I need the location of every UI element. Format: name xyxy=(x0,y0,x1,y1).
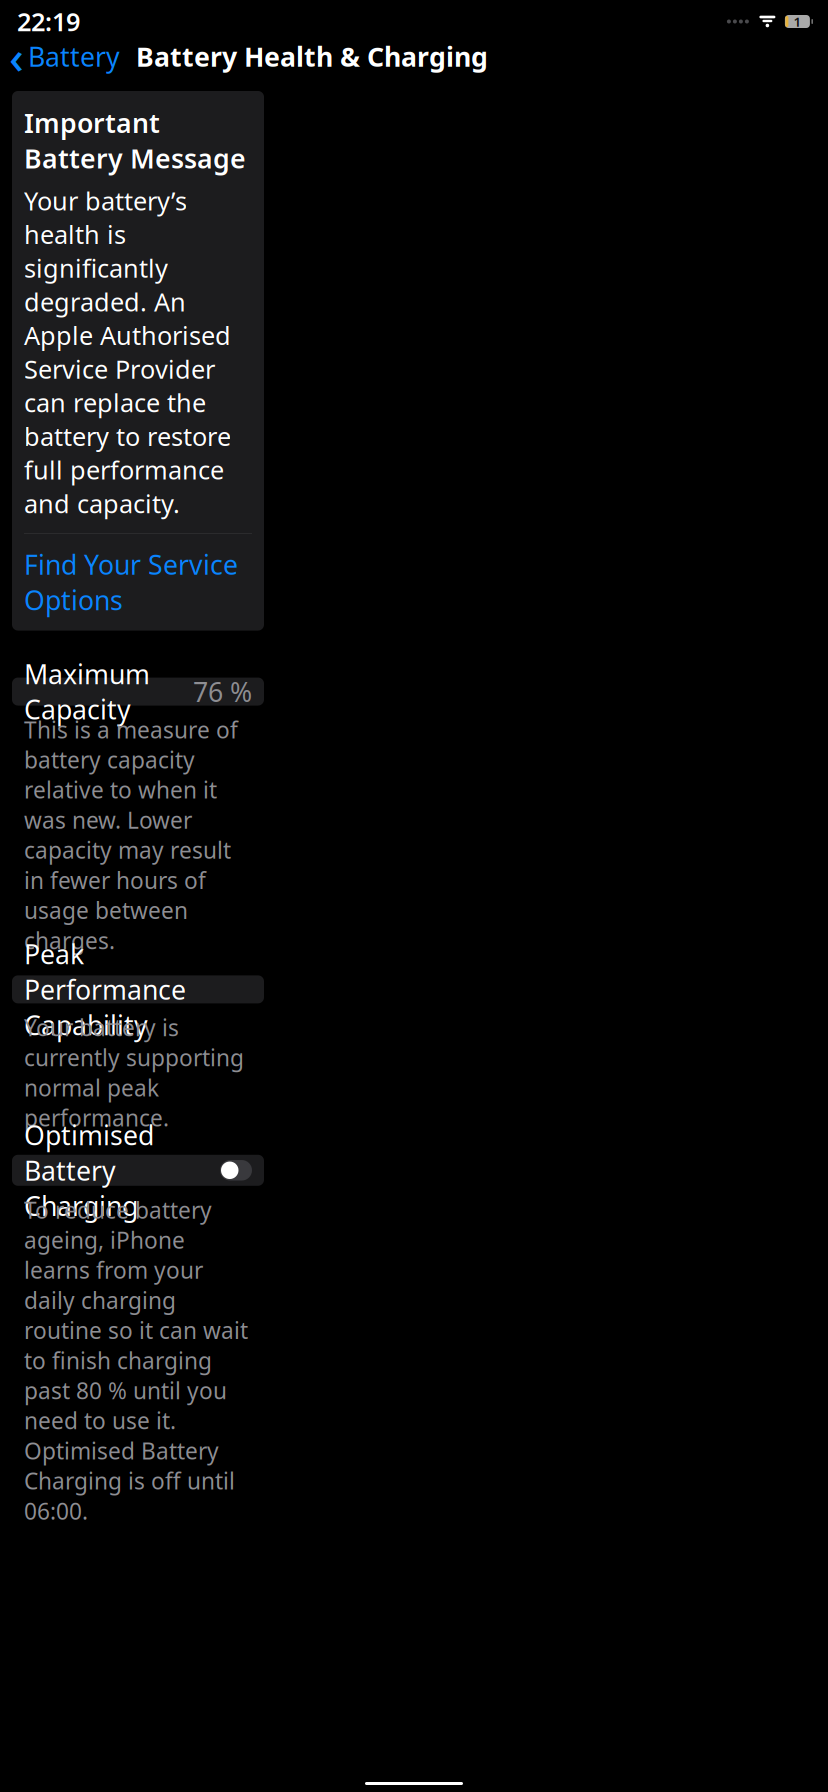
staticText: 1 xyxy=(793,13,801,30)
button[interactable]: ‹ xyxy=(3,32,126,81)
staticText: This is a measure of battery capacity re… xyxy=(24,715,238,955)
button[interactable]: Find Your Service Options xyxy=(24,534,252,630)
button[interactable]: Optimised Battery Charging xyxy=(12,1155,264,1186)
staticText: Peak Performance Capability xyxy=(24,936,186,1042)
staticText: Your battery is currently supporting nor… xyxy=(24,1012,244,1133)
staticText: 22:19 xyxy=(17,5,80,38)
staticText: Battery xyxy=(28,39,120,74)
staticText: Maximum Capacity xyxy=(24,656,150,727)
button[interactable]: Peak Performance Capability xyxy=(12,975,264,1003)
staticText: Battery Health & Charging xyxy=(136,39,488,74)
staticText: Optimised Battery Charging xyxy=(24,1117,154,1223)
staticText: Important Battery Message xyxy=(24,105,246,176)
staticText: ‹ xyxy=(9,26,24,87)
staticText: To reduce battery ageing, iPhone learns … xyxy=(24,1195,248,1526)
staticText: Find Your Service Options xyxy=(24,547,238,617)
staticText: Your battery’s health is significantly d… xyxy=(24,184,231,520)
staticText: 76 % xyxy=(193,674,252,709)
button[interactable]: Maximum Capacity xyxy=(12,678,264,706)
